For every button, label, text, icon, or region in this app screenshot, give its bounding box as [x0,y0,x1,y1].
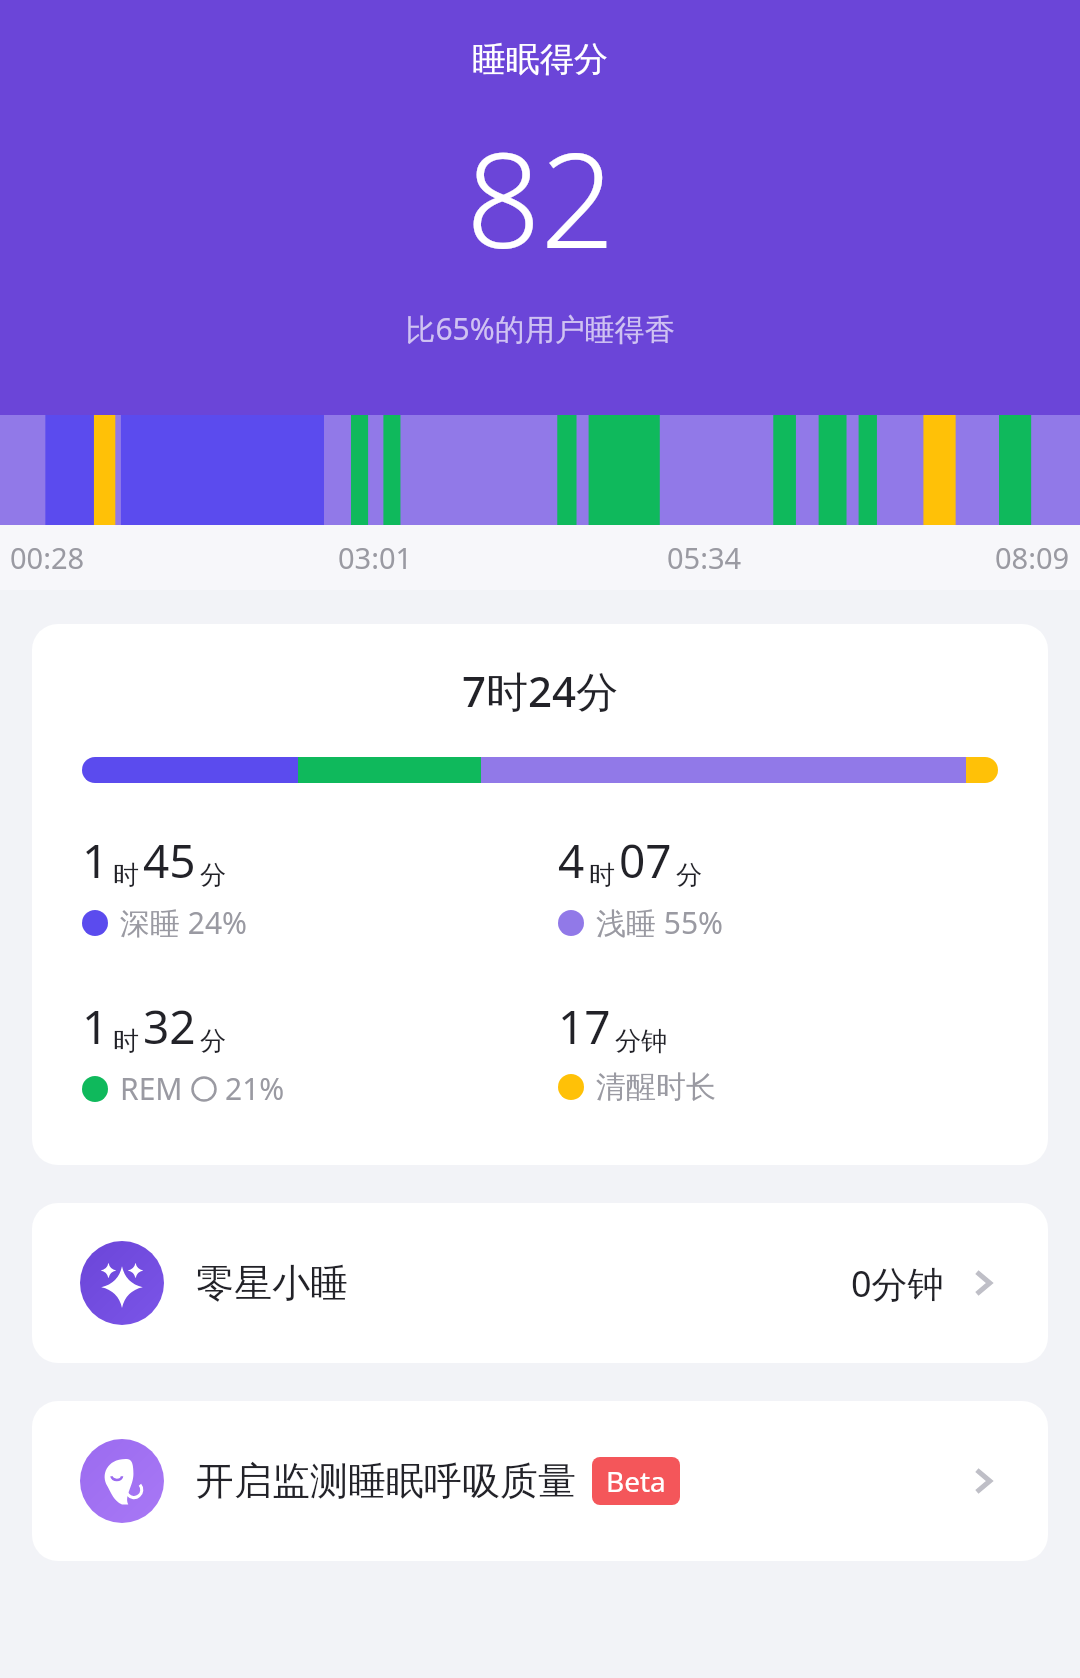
button[interactable]: 7时24分 [32,624,1048,1165]
staticText: 07 [619,829,672,892]
staticText: 0分钟 [851,1259,944,1308]
staticText: 时 [589,859,615,892]
other: REM info [191,1076,217,1102]
other: Sleep breathing quality [966,1464,1000,1498]
staticText: 分 [200,1025,226,1058]
staticText: 睡眠得分 [472,38,608,81]
staticText: 4 [558,829,585,892]
staticText: 分 [200,859,226,892]
staticText: 21% [225,1068,285,1109]
staticText: 比65%的用户睡得香 [405,308,675,349]
staticText: 05:34 [667,538,742,577]
staticText: 时 [113,859,139,892]
staticText: 1 [82,995,109,1058]
staticText: 时 [113,1025,139,1058]
staticText: 32 [143,995,196,1058]
staticText: Beta [606,1462,666,1500]
staticText: 深睡 24% [120,902,248,943]
staticText: 82 [466,109,615,286]
other: Naps [966,1266,1000,1300]
staticText: 浅睡 55% [596,902,724,943]
staticText: 7时24分 [32,662,1048,719]
staticText: 零星小睡 [196,1259,348,1307]
staticText: 03:01 [338,538,413,577]
button[interactable]: 零星小睡 [32,1203,1048,1363]
staticText: 17 [558,995,611,1058]
staticText: REM [120,1068,183,1109]
staticText: 开启监测睡眠呼吸质量 [196,1457,576,1505]
staticText: 08:09 [995,538,1070,577]
staticText: 分 [676,859,702,892]
staticText: 分钟 [615,1025,667,1058]
button[interactable]: 开启监测睡眠呼吸质量 [32,1401,1048,1561]
staticText: 45 [143,829,196,892]
staticText: 00:28 [10,538,85,577]
staticText: 清醒时长 [596,1068,716,1106]
staticText: 1 [82,829,109,892]
